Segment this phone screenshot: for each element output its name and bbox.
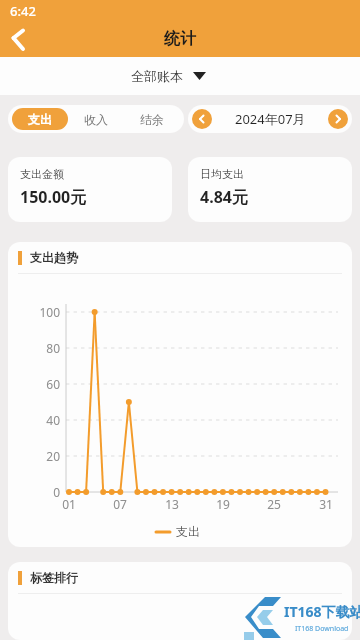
staticText: 全部账本 xyxy=(131,68,183,84)
staticText: 日均支出 xyxy=(200,167,244,181)
staticText: 01 xyxy=(55,496,83,512)
staticText: 80 xyxy=(20,340,60,356)
staticText: 结余 xyxy=(140,112,164,127)
staticText: 20 xyxy=(20,448,60,464)
staticText: 13 xyxy=(158,496,186,512)
button[interactable] xyxy=(192,109,212,129)
staticText: 6:42 xyxy=(10,2,36,20)
button[interactable]: 支出 xyxy=(12,108,68,130)
staticText: 25 xyxy=(260,496,288,512)
staticText: 4.84元 xyxy=(200,186,248,208)
staticText: 标签排行 xyxy=(30,570,78,585)
staticText: 0 xyxy=(20,484,60,500)
staticText: 150.00元 xyxy=(20,186,87,208)
staticText: 31 xyxy=(312,496,340,512)
staticText: 支出金额 xyxy=(20,167,64,181)
staticText: 19 xyxy=(209,496,237,512)
button[interactable]: 收入 xyxy=(68,108,124,130)
staticText: 100 xyxy=(20,304,60,320)
staticText: 07 xyxy=(106,496,134,512)
staticText: IT168下载站 xyxy=(284,602,360,621)
staticText: 支出 xyxy=(28,112,52,127)
staticText: 2024年07月 xyxy=(235,110,306,128)
staticText: 统计 xyxy=(164,29,196,49)
button[interactable] xyxy=(4,26,36,54)
button[interactable] xyxy=(328,109,348,129)
staticText: 40 xyxy=(20,412,60,428)
staticText: 60 xyxy=(20,376,60,392)
staticText: 支出趋势 xyxy=(30,250,78,265)
staticText: 支出 xyxy=(176,524,200,539)
staticText: 收入 xyxy=(84,112,108,127)
button[interactable]: 全部账本 xyxy=(131,68,206,84)
button[interactable]: 结余 xyxy=(124,108,180,130)
staticText: IT168 Download xyxy=(295,624,349,634)
